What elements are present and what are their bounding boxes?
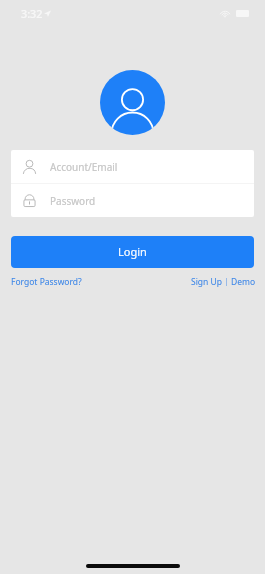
staticText: Sign Up bbox=[191, 276, 222, 288]
staticText: Login bbox=[118, 244, 147, 259]
button[interactable]: Sign Up bbox=[191, 276, 222, 288]
staticText: Account/Email bbox=[50, 160, 118, 174]
staticText: Forgot Password? bbox=[11, 276, 82, 288]
button[interactable]: Profile avatar bbox=[100, 70, 165, 135]
button[interactable]: Login bbox=[11, 236, 254, 268]
button[interactable]: Forgot Password? bbox=[11, 276, 82, 288]
staticText: 3:32 bbox=[21, 6, 43, 21]
staticText: Demo bbox=[231, 276, 256, 288]
button[interactable]: Password bbox=[11, 184, 254, 217]
staticText: Password bbox=[50, 194, 96, 208]
button[interactable]: Demo bbox=[231, 276, 256, 288]
button[interactable]: Account/Email bbox=[11, 150, 254, 183]
